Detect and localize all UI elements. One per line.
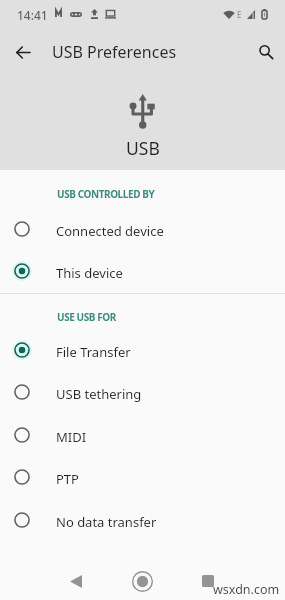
button[interactable]: USB tethering <box>0 371 285 413</box>
button[interactable]: MIDI <box>0 414 285 456</box>
staticText: USE USB FOR <box>57 310 116 324</box>
button[interactable]: Recents <box>194 567 222 595</box>
staticText: E <box>237 9 242 20</box>
staticText: USB CONTROLLED BY <box>57 187 155 201</box>
staticText: PTP <box>56 470 79 488</box>
button[interactable]: PTP <box>0 456 285 498</box>
staticText: File Transfer <box>56 343 131 361</box>
staticText: Connected device <box>56 222 164 240</box>
button[interactable]: Search <box>251 37 281 67</box>
staticText: MIDI <box>56 428 87 446</box>
button[interactable]: Back <box>10 39 36 65</box>
staticText: USB <box>126 136 160 160</box>
staticText: wsxdn.com <box>213 581 280 598</box>
button[interactable]: Back <box>62 567 90 595</box>
staticText: USB tethering <box>56 385 142 403</box>
staticText: USB Preferences <box>52 41 177 63</box>
button[interactable]: Home <box>128 567 156 595</box>
staticText: 14:41 <box>17 7 48 23</box>
staticText: No data transfer <box>56 513 157 531</box>
button[interactable]: No data transfer <box>0 499 285 541</box>
button[interactable]: Connected device <box>0 208 285 250</box>
staticText: This device <box>56 264 123 282</box>
button[interactable]: File Transfer <box>0 329 285 371</box>
button[interactable]: This device <box>0 250 285 292</box>
